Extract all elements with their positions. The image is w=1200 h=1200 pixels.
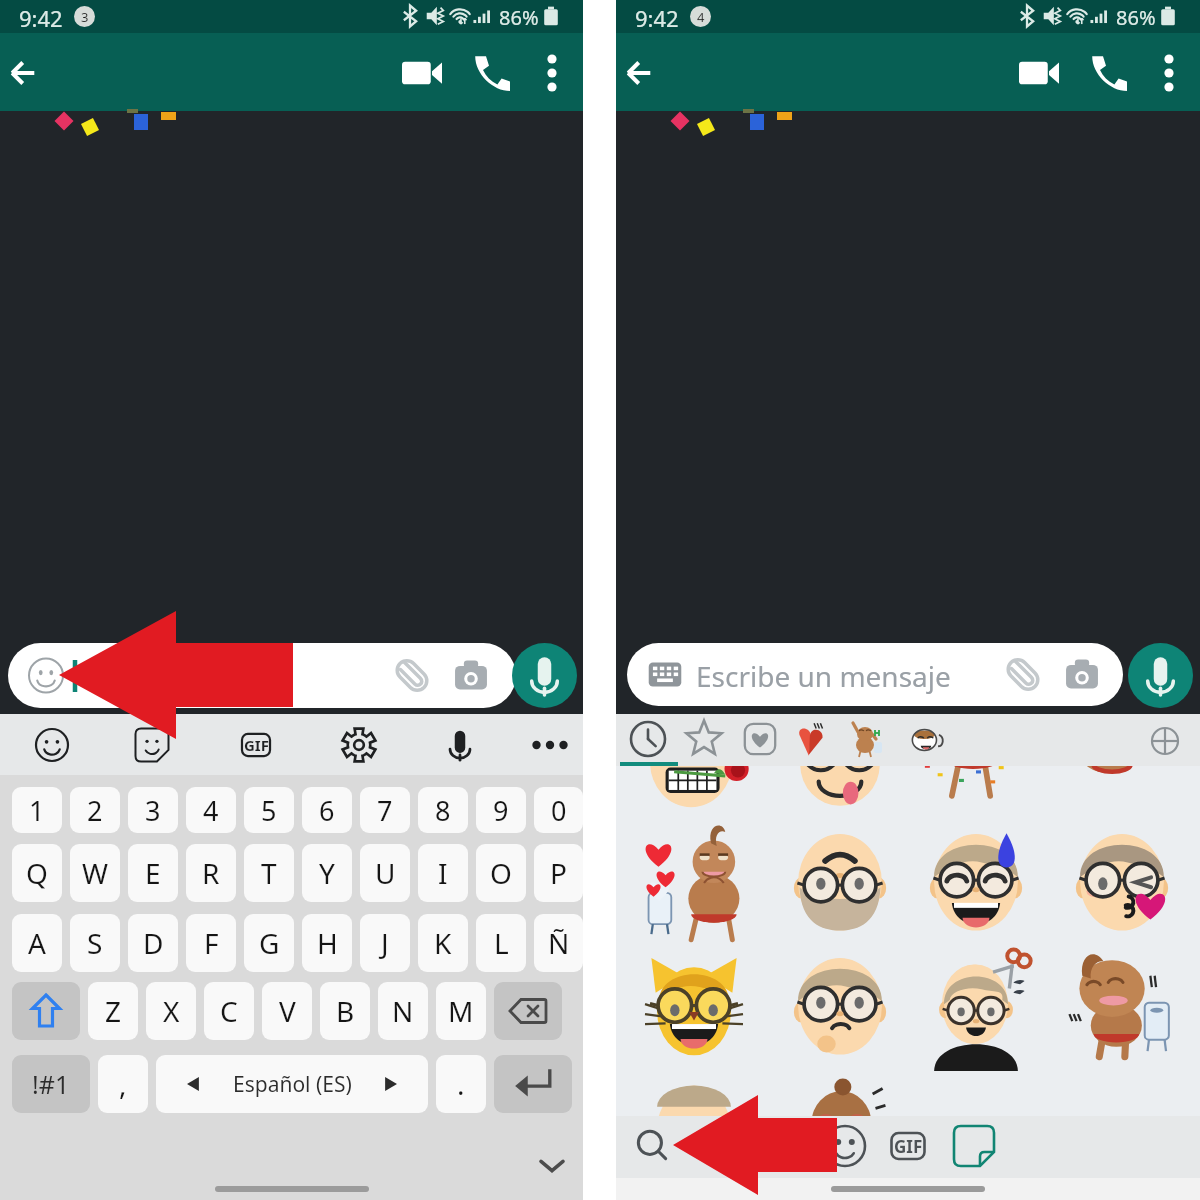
button[interactable]: Shift [12, 982, 80, 1040]
button[interactable] [623, 1060, 765, 1116]
button[interactable]: R [186, 844, 236, 902]
button[interactable] [524, 714, 576, 774]
button[interactable]: Hide keyboard [524, 1138, 580, 1194]
button[interactable]: GIF [230, 719, 282, 771]
button[interactable] [623, 812, 765, 954]
staticText: Escribe un mensaje [696, 657, 951, 695]
button[interactable]: Stickers [945, 1116, 1003, 1174]
button[interactable]: 4 [186, 787, 236, 833]
button[interactable]: S [70, 914, 120, 972]
button[interactable]: I [418, 844, 468, 902]
button[interactable]: Back [616, 33, 694, 111]
button[interactable] [623, 936, 765, 1078]
staticText: 9:42 [635, 3, 679, 33]
button[interactable]: Q [12, 844, 62, 902]
staticText: V [279, 992, 296, 1030]
button[interactable] [622, 714, 674, 766]
button[interactable]: 0 [534, 787, 583, 833]
button[interactable]: 1 [12, 787, 62, 833]
button[interactable]: M [436, 982, 486, 1040]
button[interactable]: Hi stickers [839, 714, 891, 766]
button[interactable]: G [244, 914, 294, 972]
button[interactable] [623, 766, 765, 830]
button[interactable]: !#1 [12, 1055, 90, 1113]
button[interactable]: , [98, 1055, 148, 1113]
button[interactable]: More options [521, 33, 583, 111]
button[interactable]: N [378, 982, 428, 1040]
button[interactable]: C [204, 982, 254, 1040]
button[interactable]: X [146, 982, 196, 1040]
button[interactable] [1051, 936, 1193, 1078]
button[interactable]: 8 [418, 787, 468, 833]
button[interactable]: Enter [494, 1055, 572, 1113]
button[interactable] [769, 936, 911, 1078]
button[interactable] [26, 714, 78, 774]
button[interactable]: O [476, 844, 526, 902]
button[interactable]: Search stickers [623, 1116, 681, 1174]
button[interactable]: GIF [882, 1120, 934, 1172]
button[interactable] [905, 936, 1047, 1078]
button[interactable]: 7 [360, 787, 410, 833]
staticText: 8 [435, 792, 451, 829]
button[interactable]: Coffee stickers [900, 714, 952, 766]
staticText: H [317, 924, 338, 962]
staticText: 6 [319, 792, 335, 829]
button[interactable]: A [12, 914, 62, 972]
button[interactable]: F [186, 914, 236, 972]
button[interactable] [126, 714, 178, 774]
button[interactable]: Y [302, 844, 352, 902]
button[interactable]: D [128, 914, 178, 972]
button[interactable] [905, 766, 1047, 830]
button[interactable] [8, 643, 516, 708]
button[interactable]: Heart stickers [786, 714, 838, 766]
button[interactable]: Ñ [534, 914, 583, 972]
button[interactable] [905, 812, 1047, 954]
button[interactable]: 2 [70, 787, 120, 833]
button[interactable]: B [320, 982, 370, 1040]
button[interactable]: Record voice message [512, 643, 577, 708]
button[interactable]: Z [88, 982, 138, 1040]
button[interactable]: K [418, 914, 468, 972]
button[interactable]: U [360, 844, 410, 902]
staticText: D [143, 924, 164, 962]
button[interactable] [734, 714, 786, 766]
button[interactable]: J [360, 914, 410, 972]
button[interactable]: Back [0, 33, 78, 111]
staticText: 1 [29, 792, 45, 829]
button[interactable] [769, 812, 911, 954]
button[interactable]: More options [1138, 33, 1200, 111]
button[interactable]: Voice call [456, 33, 528, 111]
button[interactable]: H [302, 914, 352, 972]
button[interactable]: Video call [386, 33, 458, 111]
button[interactable]: W [70, 844, 120, 902]
button[interactable]: 6 [302, 787, 352, 833]
button[interactable]: Record voice message [1128, 643, 1193, 708]
button[interactable]: Backspace [494, 982, 562, 1040]
button[interactable]: Español (ES) [156, 1055, 428, 1113]
button[interactable]: T [244, 844, 294, 902]
button[interactable]: Add stickers [1139, 714, 1191, 766]
button[interactable] [1051, 812, 1193, 954]
staticText: Ñ [548, 924, 570, 962]
button[interactable]: L [476, 914, 526, 972]
button[interactable]: 3 [128, 787, 178, 833]
button[interactable]: Voice call [1073, 33, 1145, 111]
button[interactable]: Escribe un mensaje [627, 643, 1123, 706]
button[interactable]: 5 [244, 787, 294, 833]
button[interactable]: Emoji [816, 1116, 874, 1174]
staticText: G [259, 924, 280, 962]
button[interactable] [1051, 766, 1193, 830]
button[interactable] [333, 714, 385, 774]
button[interactable]: E [128, 844, 178, 902]
staticText: S [87, 924, 103, 962]
button[interactable]: . [436, 1055, 486, 1113]
button[interactable]: V [262, 982, 312, 1040]
button[interactable] [434, 714, 486, 774]
staticText: Q [26, 854, 48, 892]
button[interactable]: P [534, 844, 583, 902]
button[interactable] [769, 1060, 911, 1116]
button[interactable]: 9 [476, 787, 526, 833]
button[interactable] [678, 714, 730, 766]
button[interactable]: Video call [1003, 33, 1075, 111]
button[interactable] [769, 766, 911, 830]
